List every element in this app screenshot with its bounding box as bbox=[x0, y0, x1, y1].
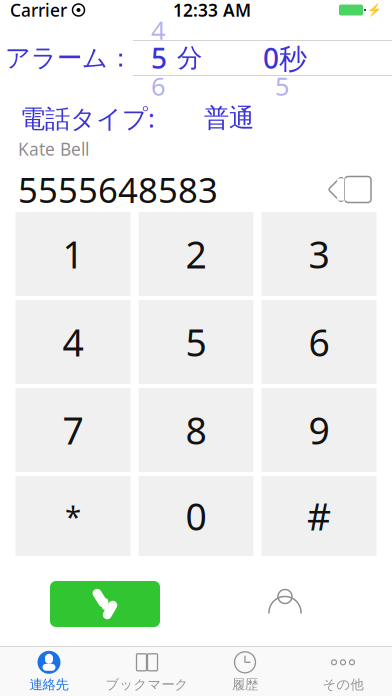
staticText: その他 bbox=[322, 676, 363, 693]
staticText: 1 bbox=[62, 229, 83, 279]
staticText: # bbox=[307, 491, 331, 541]
button[interactable]: ブックマーク bbox=[98, 647, 196, 696]
staticText: 2 bbox=[185, 229, 206, 279]
staticText: Kate Bell bbox=[18, 137, 89, 160]
staticText: * bbox=[65, 496, 81, 535]
staticText: 履歴 bbox=[232, 676, 258, 693]
staticText: 4 bbox=[62, 317, 83, 367]
button[interactable]: * bbox=[15, 476, 130, 556]
button[interactable]: 3 bbox=[261, 212, 376, 296]
staticText: 7 bbox=[62, 405, 83, 455]
button[interactable]: Call bbox=[50, 581, 160, 627]
staticText: 分 bbox=[177, 42, 202, 73]
staticText: 12:33 AM bbox=[173, 0, 251, 21]
button[interactable]: 電話タイプ: bbox=[0, 96, 392, 140]
staticText: 0秒 bbox=[263, 39, 307, 77]
staticText: Carrier bbox=[10, 0, 67, 21]
staticText: 8 bbox=[185, 405, 206, 455]
button[interactable]: 0 bbox=[138, 476, 253, 556]
button[interactable]: # bbox=[261, 476, 376, 556]
button[interactable]: 6 bbox=[261, 300, 376, 384]
staticText: 6 bbox=[308, 317, 329, 367]
button[interactable]: Add Contact bbox=[258, 581, 312, 627]
staticText: 電話タイプ: bbox=[20, 101, 155, 135]
button[interactable]: 4 bbox=[15, 300, 130, 384]
staticText: 3 bbox=[308, 229, 329, 279]
staticText: 6 bbox=[151, 69, 165, 103]
button[interactable]: 5 bbox=[138, 300, 253, 384]
button[interactable]: 連絡先 bbox=[0, 647, 98, 696]
staticText: 5 bbox=[151, 39, 167, 77]
staticText: ⚡ bbox=[367, 3, 382, 17]
button[interactable]: 9 bbox=[261, 388, 376, 472]
button[interactable]: Delete bbox=[324, 169, 380, 209]
staticText: 普通 bbox=[204, 102, 254, 133]
staticText: 5555648583 bbox=[18, 166, 218, 212]
staticText: ブックマーク bbox=[105, 676, 188, 693]
staticText: 4 bbox=[151, 13, 165, 47]
staticText: 連絡先 bbox=[29, 676, 68, 693]
button[interactable]: 8 bbox=[138, 388, 253, 472]
staticText: 5 bbox=[185, 317, 206, 367]
button[interactable]: その他 bbox=[294, 647, 392, 696]
button[interactable]: 履歴 bbox=[196, 647, 294, 696]
button[interactable]: 2 bbox=[138, 212, 253, 296]
staticText: アラーム： bbox=[5, 42, 133, 73]
staticText: 9 bbox=[308, 405, 329, 455]
button[interactable]: 7 bbox=[15, 388, 130, 472]
staticText: 5 bbox=[275, 69, 289, 103]
button[interactable]: 1 bbox=[15, 212, 130, 296]
staticText: 0 bbox=[185, 491, 206, 541]
